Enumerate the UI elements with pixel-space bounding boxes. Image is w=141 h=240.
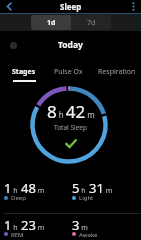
staticText: Deep bbox=[11, 194, 26, 202]
button[interactable]: 3 m bbox=[72, 216, 98, 240]
staticText: 1 h 48 m bbox=[4, 179, 45, 197]
staticText: REM bbox=[11, 231, 24, 237]
button[interactable] bbox=[127, 0, 141, 13]
staticText: Light bbox=[79, 194, 94, 202]
staticText: 7d bbox=[87, 18, 96, 28]
staticText: Total Sleep bbox=[54, 123, 88, 132]
staticText: 8 h 42 m bbox=[47, 100, 95, 123]
button[interactable]: 1d bbox=[31, 15, 71, 30]
button[interactable]: Respiration bbox=[98, 67, 136, 77]
button[interactable] bbox=[10, 42, 17, 49]
staticText: 1 h 23 m bbox=[4, 216, 45, 234]
button[interactable]: 5 h 31 m bbox=[72, 179, 113, 205]
staticText: Stages bbox=[12, 67, 36, 77]
button[interactable]: 1 h 23 m bbox=[4, 216, 45, 240]
staticText: 3 m bbox=[72, 216, 88, 234]
button[interactable]: 7d bbox=[71, 15, 111, 30]
staticText: Sleep bbox=[60, 1, 82, 12]
staticText: 5 h 31 m bbox=[72, 179, 113, 197]
button[interactable]: Stages bbox=[12, 67, 36, 82]
staticText: Today bbox=[58, 39, 83, 51]
button[interactable] bbox=[0, 0, 16, 13]
button[interactable]: Pulse Ox bbox=[54, 67, 83, 77]
staticText: 1d bbox=[47, 18, 56, 28]
staticText: Awake bbox=[79, 231, 98, 237]
button[interactable]: 1 h 48 m bbox=[4, 179, 45, 205]
